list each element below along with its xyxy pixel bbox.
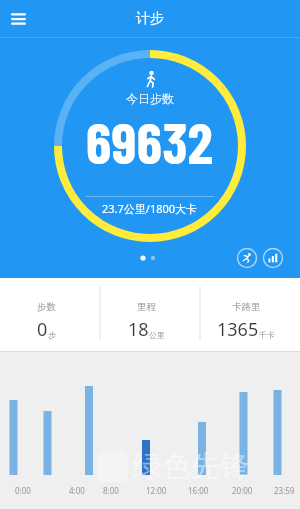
staticText: 步 [48,330,56,340]
staticText: 公里 [149,330,165,340]
staticText: 4:00 [69,485,85,496]
staticText: 千卡 [259,330,275,340]
staticText: 今日步数 [126,91,174,106]
staticText: 1365 [217,317,259,342]
staticText: 16:00 [188,485,209,496]
staticText: 23.7公里/1800大卡 [102,201,198,216]
staticText: 绿色先锋 [133,448,249,485]
staticText: 0:00 [15,485,31,496]
staticText: 69632 [86,107,214,175]
staticText: 卡路里 [232,301,261,313]
staticText: 0 [37,317,48,342]
staticText: 步数 [37,301,56,313]
staticText: 18 [128,317,149,342]
staticText: 8:00 [103,485,119,496]
staticText: 里程 [137,301,156,313]
staticText: 23:59 [274,485,295,496]
staticText: 计步 [136,10,164,28]
staticText: 20:00 [232,485,253,496]
staticText: 12:00 [146,485,167,496]
